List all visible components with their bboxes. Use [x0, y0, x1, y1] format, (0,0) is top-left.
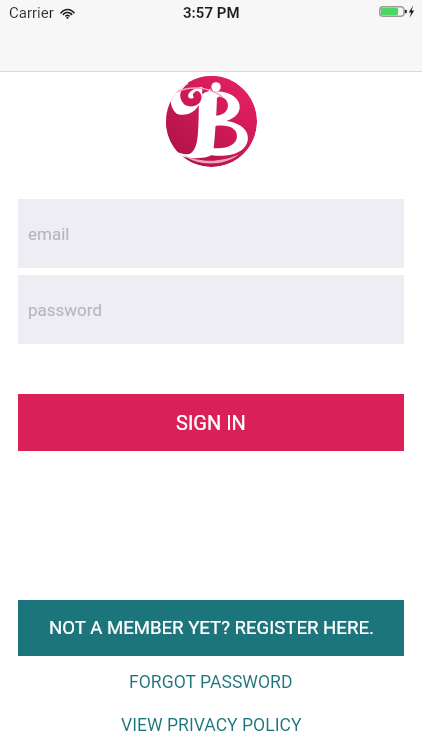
staticText: email — [28, 224, 70, 244]
staticText: SIGN IN — [176, 411, 246, 434]
other: Brand logo — [166, 76, 257, 167]
staticText: FORGOT PASSWORD — [129, 672, 293, 693]
button[interactable]: password — [18, 275, 404, 344]
staticText: Carrier — [9, 4, 54, 21]
button[interactable]: email — [18, 199, 404, 268]
other: Battery charging — [379, 6, 416, 17]
staticText: 3:57 PM — [183, 4, 240, 21]
button[interactable]: VIEW PRIVACY POLICY — [0, 710, 422, 740]
staticText: VIEW PRIVACY POLICY — [121, 715, 302, 736]
staticText: password — [28, 300, 103, 320]
button[interactable]: NOT A MEMBER YET? REGISTER HERE. — [18, 600, 404, 656]
button[interactable]: FORGOT PASSWORD — [0, 667, 422, 697]
button[interactable]: SIGN IN — [18, 394, 404, 451]
staticText: NOT A MEMBER YET? REGISTER HERE. — [49, 617, 374, 639]
